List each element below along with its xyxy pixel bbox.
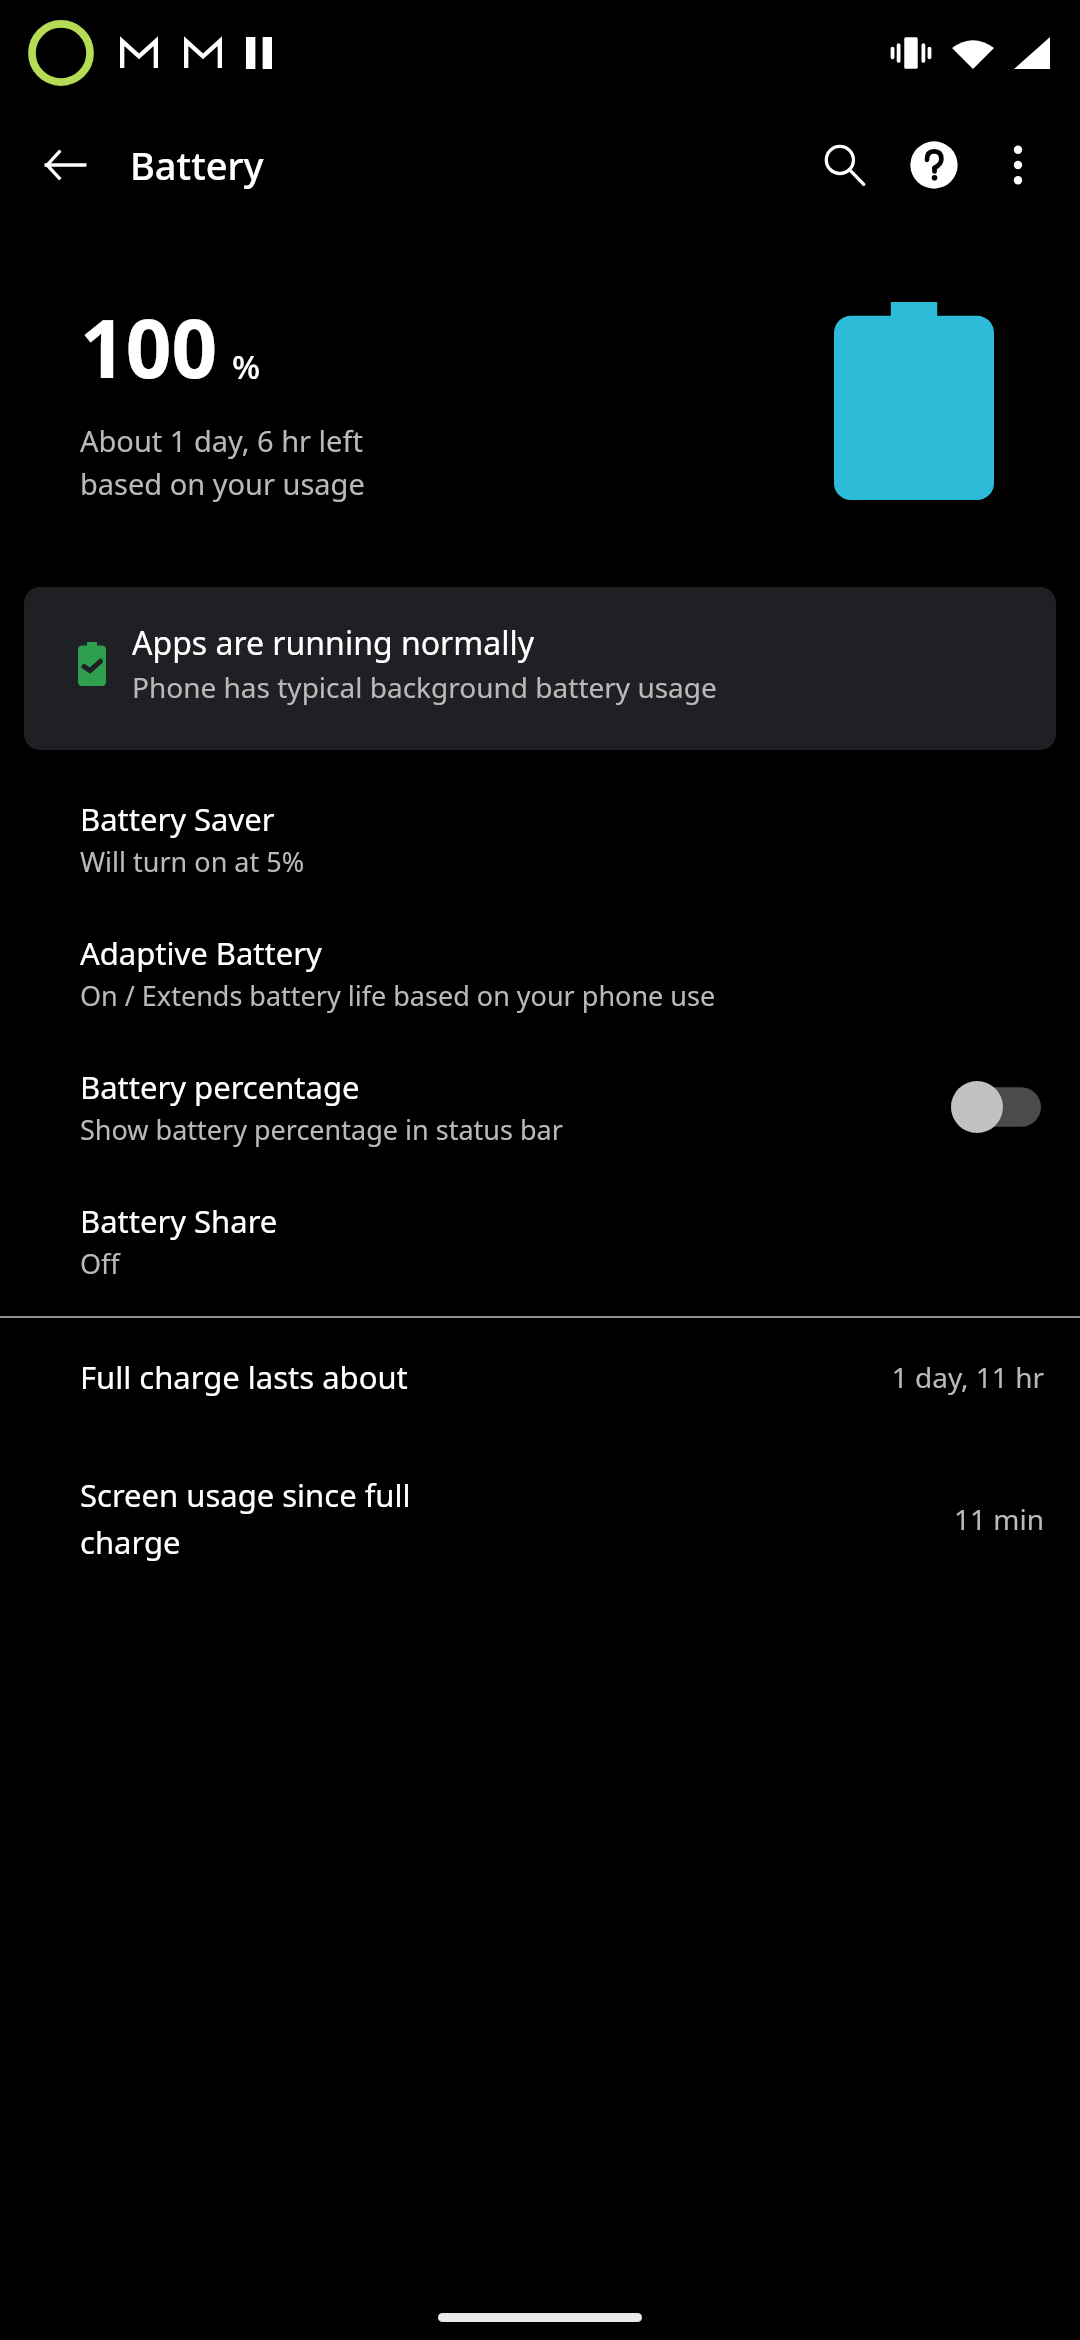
staticText: Apps are running normally [132,621,534,665]
button[interactable]: Help [896,127,972,203]
button[interactable]: Battery Share [0,1174,1080,1316]
button[interactable]: Search [806,127,882,203]
staticText: 11 min [953,1500,1044,1538]
staticText: Will turn on at 5% [80,843,305,880]
staticText: Battery Saver [80,798,275,840]
staticText: Battery [130,139,264,191]
staticText: Phone has typical background battery usa… [132,668,717,706]
button[interactable]: Battery percentage [950,1080,1042,1134]
button[interactable]: Apps are running normally [24,587,1056,750]
button[interactable]: Screen usage since full charge [0,1436,1080,1601]
staticText: 1 day, 11 hr [891,1358,1044,1396]
button[interactable]: Battery Saver [0,772,1080,906]
button[interactable]: Battery percentage [0,1040,1080,1174]
staticText: Screen usage since full charge [80,1474,939,1563]
staticText: Show battery percentage in status bar [80,1111,563,1148]
staticText: Full charge lasts about [80,1356,877,1398]
staticText: On / Extends battery life based on your … [80,977,716,1014]
staticText: 100 [80,292,218,401]
staticText: About 1 day, 6 hr left based on your usa… [80,421,365,503]
staticText: Battery Share [80,1200,278,1242]
staticText: Off [80,1245,120,1282]
staticText: % [232,344,261,389]
staticText: Battery percentage [80,1066,360,1108]
button[interactable]: Adaptive Battery [0,906,1080,1040]
staticText: Adaptive Battery [80,932,322,974]
button[interactable]: Back [26,126,104,204]
button[interactable]: More options [980,127,1056,203]
button[interactable]: Full charge lasts about [0,1318,1080,1436]
